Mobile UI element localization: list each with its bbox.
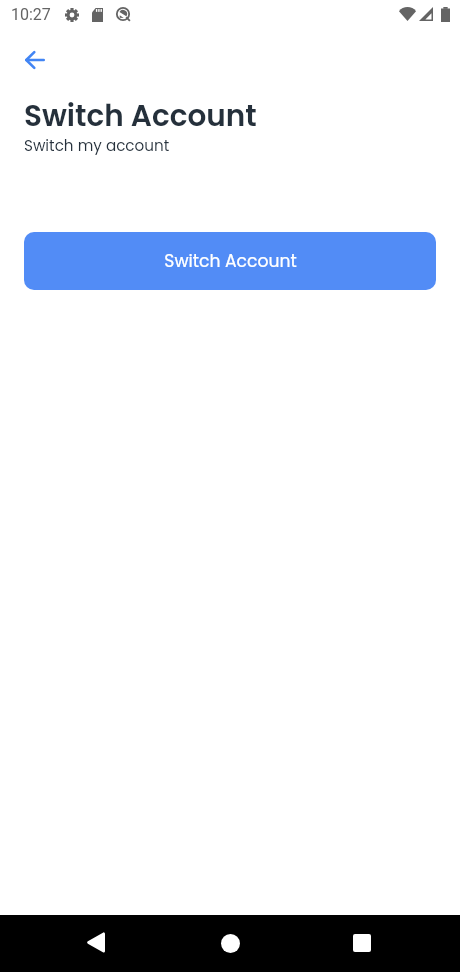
- staticText: Switch my account: [24, 135, 170, 156]
- button[interactable]: Switch Account: [24, 232, 436, 290]
- staticText: Switch Account: [24, 95, 257, 136]
- button[interactable]: Recent apps: [338, 919, 386, 967]
- button[interactable]: Back: [12, 37, 58, 83]
- staticText: 10:27: [11, 5, 51, 24]
- button[interactable]: Home: [206, 919, 254, 967]
- staticText: Switch Account: [164, 249, 297, 273]
- button[interactable]: Back: [72, 918, 120, 966]
